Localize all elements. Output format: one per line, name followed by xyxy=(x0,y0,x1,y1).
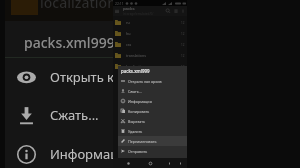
button[interactable]: Change view xyxy=(172,7,180,15)
button[interactable]: Отправить xyxy=(118,146,187,156)
button[interactable]: Копировать xyxy=(118,106,187,116)
staticText: Вырезать xyxy=(128,119,146,124)
staticText: Информац xyxy=(50,145,119,163)
button[interactable]: Сжать... xyxy=(118,86,187,96)
button[interactable]: translations xyxy=(113,50,187,61)
staticText: Сжать... xyxy=(128,89,142,94)
button[interactable]: Navigate up xyxy=(113,7,121,15)
staticText: packs.xml999 xyxy=(121,68,150,74)
staticText: ru xyxy=(126,20,130,25)
staticText: css xyxy=(126,42,132,47)
staticText: Копировать xyxy=(128,109,150,114)
staticText: Открыть к xyxy=(50,68,115,86)
button[interactable]: Открыть как архив xyxy=(118,76,187,86)
button[interactable]: Информац xyxy=(5,136,118,168)
staticText: 12 xyxy=(181,54,185,58)
button[interactable]: Открыть к xyxy=(5,59,118,97)
staticText: packs xyxy=(123,6,135,12)
staticText: localization xyxy=(126,64,146,69)
staticText: 12 xyxy=(181,21,185,25)
staticText: Отправить xyxy=(128,149,148,154)
staticText: translations xyxy=(126,53,146,58)
staticText: Сжать... xyxy=(50,106,99,124)
button[interactable]: localization xyxy=(113,61,187,72)
button[interactable]: Вырезать xyxy=(118,116,187,126)
staticText: hu xyxy=(126,31,131,36)
staticText: Переименовать xyxy=(128,139,157,144)
button[interactable]: Search xyxy=(164,7,172,15)
button[interactable]: Сжать... xyxy=(5,97,118,135)
button[interactable]: Menu xyxy=(178,161,183,166)
staticText: 12 xyxy=(181,32,185,36)
button[interactable]: Back xyxy=(125,160,132,167)
button[interactable]: Recents xyxy=(167,161,172,166)
button[interactable]: More options xyxy=(180,8,186,14)
button[interactable]: css xyxy=(113,39,187,50)
staticText: Информация xyxy=(128,99,152,104)
staticText: packs.xml999 xyxy=(24,33,115,52)
staticText: 12 xyxy=(181,65,185,69)
staticText: Открыть как архив xyxy=(128,79,162,84)
staticText: /storage/emulated/0/ xyxy=(123,12,154,16)
button[interactable]: Удалить xyxy=(118,126,187,136)
staticText: 12 xyxy=(181,43,185,47)
button[interactable]: Home xyxy=(147,160,154,167)
button[interactable]: ru xyxy=(113,17,187,28)
button[interactable]: hu xyxy=(113,28,187,39)
staticText: localization xyxy=(40,0,116,12)
button[interactable]: Переименовать xyxy=(118,136,187,146)
button[interactable]: Информация xyxy=(118,96,187,106)
staticText: 22:11 xyxy=(115,1,124,6)
staticText: Удалить xyxy=(128,129,143,134)
